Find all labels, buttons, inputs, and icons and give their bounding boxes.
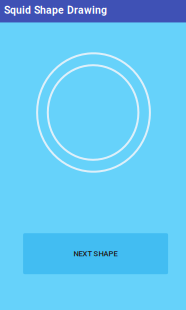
staticText: Squid Shape Drawing	[4, 4, 107, 16]
button[interactable]: NEXT SHAPE	[23, 233, 168, 274]
staticText: NEXT SHAPE	[74, 249, 118, 258]
